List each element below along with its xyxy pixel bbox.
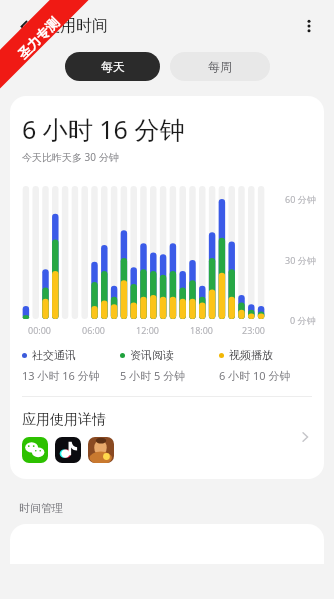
staticText: 12:00 — [136, 324, 160, 336]
staticText: 30 分钟 — [285, 254, 316, 266]
button[interactable]: Back — [7, 9, 41, 43]
staticText: 0 分钟 — [290, 314, 316, 326]
staticText: 时间管理 — [19, 501, 63, 515]
staticText: 圣力专测 — [14, 14, 62, 62]
staticText: 资讯阅读 — [130, 348, 174, 362]
staticText: 每周 — [208, 59, 232, 74]
staticText: 06:00 — [82, 324, 106, 336]
staticText: 18:00 — [190, 324, 214, 336]
button[interactable]: 应用使用详情 — [10, 411, 324, 463]
staticText: 6 小时 16 分钟 — [22, 112, 185, 146]
staticText: 5 小时 5 分钟 — [120, 368, 186, 383]
staticText: 应用使用详情 — [22, 411, 106, 429]
staticText: 社交通讯 — [32, 348, 76, 362]
button[interactable]: More options — [292, 9, 326, 43]
staticText: 每天 — [101, 59, 125, 74]
button[interactable]: 每周 — [170, 52, 270, 81]
staticText: 00:00 — [28, 324, 52, 336]
staticText: 60 分钟 — [285, 193, 316, 205]
staticText: 23:00 — [242, 324, 266, 336]
staticText: 13 小时 16 分钟 — [22, 368, 100, 383]
staticText: 视频播放 — [229, 348, 273, 362]
staticText: 今天比昨天多 30 分钟 — [22, 150, 119, 164]
staticText: 6 小时 10 分钟 — [219, 368, 291, 383]
button[interactable]: 每天 — [65, 52, 160, 81]
staticText: 使用时间 — [44, 16, 108, 36]
